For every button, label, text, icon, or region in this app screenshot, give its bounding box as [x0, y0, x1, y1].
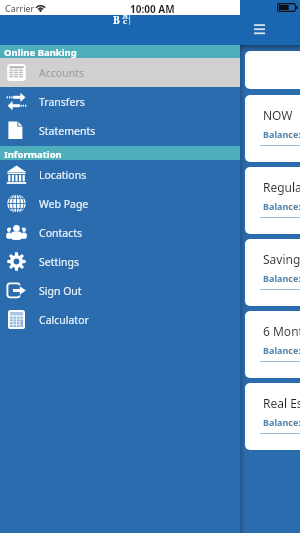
- button[interactable]: 6 Month CD: [245, 311, 300, 378]
- staticText: Balance:: [263, 200, 300, 212]
- staticText: Savings: [263, 251, 300, 267]
- button[interactable]: Savings: [245, 239, 300, 306]
- button[interactable]: Contacts: [0, 218, 240, 247]
- staticText: Transfers: [39, 95, 85, 109]
- button[interactable]: Sign Out: [0, 276, 240, 305]
- button[interactable]: Calculator: [0, 305, 240, 334]
- staticText: N: [123, 12, 128, 20]
- staticText: Accounts: [39, 66, 84, 80]
- staticText: Carrier: [5, 2, 35, 14]
- staticText: Locations: [39, 168, 87, 182]
- button[interactable]: Locations: [0, 160, 240, 189]
- staticText: Calculator: [39, 313, 89, 327]
- staticText: Sign Out: [39, 284, 82, 298]
- staticText: NOW: [263, 107, 293, 123]
- staticText: B: [113, 13, 120, 27]
- button[interactable]: Accounts: [0, 58, 240, 87]
- button[interactable]: Settings: [0, 247, 240, 276]
- staticText: Balance:: [263, 272, 300, 284]
- staticText: Balance:: [263, 344, 300, 356]
- staticText: Balance:: [263, 416, 300, 428]
- staticText: Real Estate Loan: [263, 395, 300, 411]
- button[interactable]: Statements: [0, 116, 240, 145]
- button[interactable]: Regular Savings: [245, 167, 300, 234]
- button[interactable]: Real Estate Loan: [245, 383, 300, 450]
- staticText: Statements: [39, 124, 96, 138]
- staticText: C: [123, 18, 128, 26]
- staticText: Settings: [39, 255, 79, 269]
- staticText: Online Banking: [4, 46, 77, 59]
- staticText: Information: [4, 148, 62, 161]
- staticText: Regular Savings: [263, 179, 300, 195]
- button[interactable]: NOW: [245, 95, 300, 162]
- button[interactable]: [245, 51, 300, 89]
- button[interactable]: Web Page: [0, 189, 240, 218]
- staticText: Web Page: [39, 197, 89, 211]
- staticText: Contacts: [39, 226, 83, 240]
- button[interactable]: Transfers: [0, 87, 240, 116]
- staticText: 6 Month CD: [263, 323, 300, 339]
- staticText: Balance:: [263, 128, 300, 140]
- staticText: 10:00 AM: [130, 2, 175, 16]
- button[interactable]: Open navigation menu: [244, 14, 274, 44]
